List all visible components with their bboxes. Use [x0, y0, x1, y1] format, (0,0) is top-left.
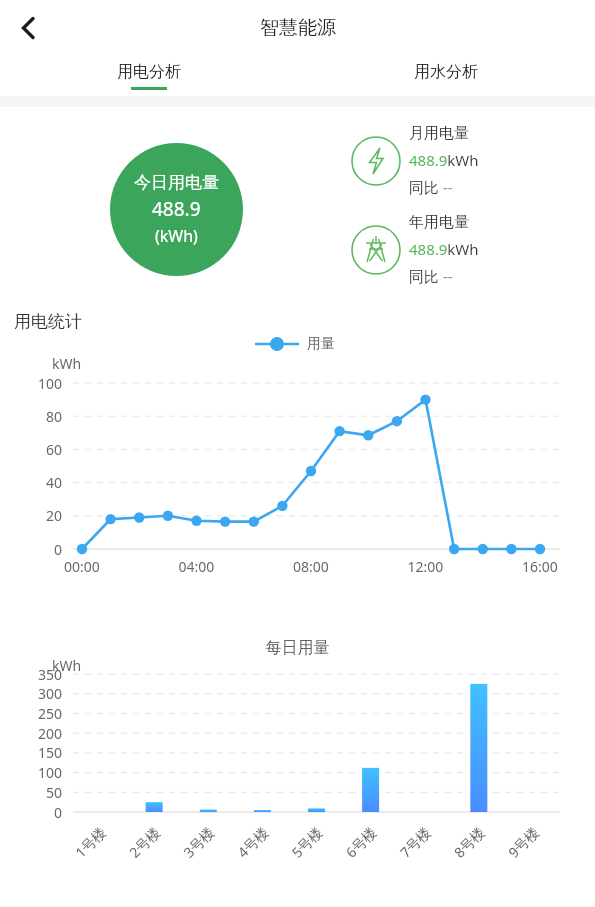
button[interactable]: Back — [6, 6, 50, 50]
button[interactable]: 用电分析 — [0, 56, 297, 96]
staticText: 用电统计 — [14, 311, 82, 332]
staticText: 月用电量 — [409, 124, 469, 143]
staticText: 同比 -- — [409, 266, 453, 286]
staticText: (kWh) — [155, 225, 198, 247]
staticText: 今日用电量 — [134, 172, 219, 193]
button[interactable]: 今日用电量 — [110, 143, 243, 276]
button[interactable]: 用水分析 — [297, 56, 595, 96]
button[interactable]: 年用电量 — [350, 213, 479, 286]
staticText: 用水分析 — [414, 62, 478, 82]
staticText: 年用电量 — [409, 213, 469, 232]
staticText: 用电分析 — [117, 62, 181, 82]
button[interactable]: 月用电量 — [350, 124, 479, 197]
staticText: 488.9kWh — [409, 150, 479, 170]
staticText: 488.9kWh — [409, 239, 479, 259]
staticText: 488.9 — [152, 196, 201, 222]
staticText: 智慧能源 — [260, 16, 336, 40]
staticText: 同比 -- — [409, 177, 453, 197]
